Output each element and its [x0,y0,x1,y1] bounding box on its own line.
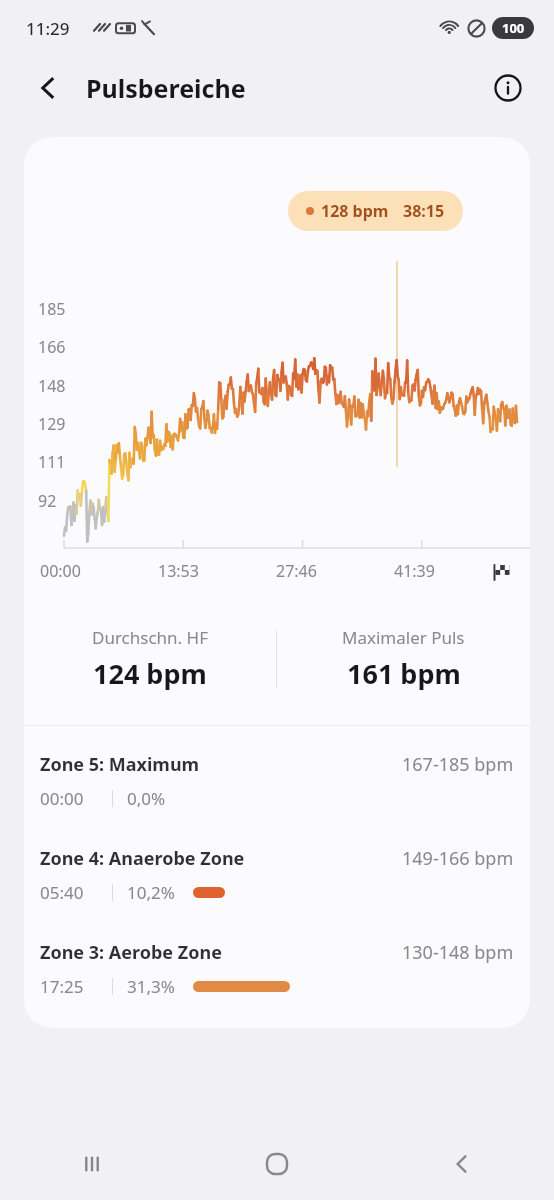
button[interactable]: Back [24,64,72,112]
button[interactable]: Back [369,1128,554,1200]
staticText: Durchschn. HF [92,626,208,649]
button[interactable]: Recents [0,1128,184,1200]
button[interactable]: Zone 5: Maximum [24,752,530,810]
staticText: Pulsbereiche [86,71,246,105]
staticText: 00:00 [40,787,84,810]
staticText: 129 [38,413,66,435]
staticText: 92 [38,490,57,512]
button[interactable]: Zone 4: Anaerobe Zone [24,846,530,904]
staticText: 185 [38,298,66,320]
staticText: 27:46 [276,560,317,582]
staticText: 128 bpm [321,200,389,222]
staticText: 161 bpm [347,655,461,692]
staticText: 05:40 [40,881,84,904]
staticText: Zone 3: Aerobe Zone [40,940,222,965]
button[interactable]: Durchschn. HF [24,626,276,692]
button[interactable]: Home [184,1128,369,1200]
staticText: 11:29 [26,17,70,40]
staticText: Maximaler Puls [342,626,465,649]
button[interactable]: Zone 3: Aerobe Zone [24,940,530,998]
staticText: 31,3% [127,975,175,998]
staticText: 124 bpm [93,655,207,692]
staticText: 167-185 bpm [402,752,514,777]
button[interactable]: Info [484,64,532,112]
staticText: 41:39 [394,560,435,582]
staticText: 10,2% [127,881,175,904]
staticText: 17:25 [40,975,84,998]
staticText: Zone 5: Maximum [40,752,200,777]
staticText: 111 [38,451,66,473]
staticText: 0,0% [127,787,166,810]
staticText: Zone 4: Anaerobe Zone [40,846,245,871]
staticText: 149-166 bpm [402,846,514,871]
staticText: 00:00 [40,560,81,582]
staticText: 38:15 [403,200,445,222]
button[interactable]: Maximaler Puls [277,626,530,692]
staticText: 166 [38,336,66,358]
staticText: 100 [502,19,525,37]
staticText: 130-148 bpm [402,940,514,965]
staticText: 13:53 [158,560,199,582]
button[interactable]: 128 bpm [306,200,445,222]
staticText: 148 [38,375,66,397]
